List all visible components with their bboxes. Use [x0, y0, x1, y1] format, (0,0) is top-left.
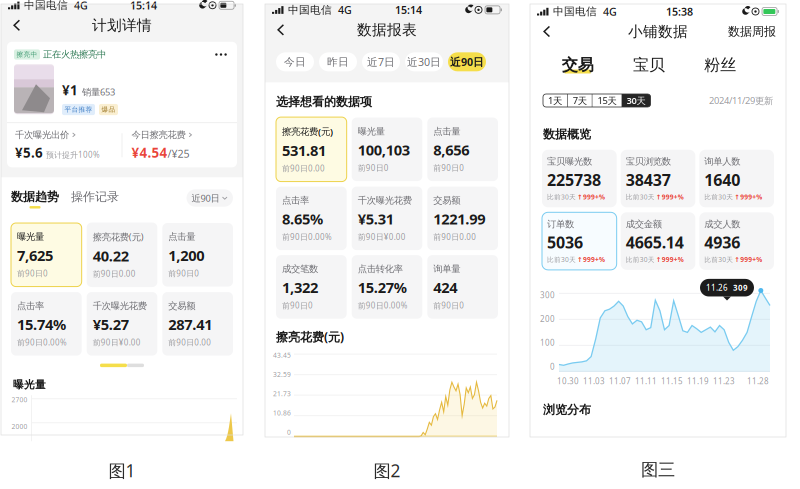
- staticText: 前90日0: [358, 162, 389, 173]
- button[interactable]: 今日: [276, 52, 314, 71]
- button[interactable]: 千次曝光花费: [87, 292, 157, 356]
- staticText: ¥5.31: [358, 209, 394, 228]
- button[interactable]: 粉丝: [685, 56, 756, 74]
- staticText: 7天: [573, 94, 587, 107]
- button[interactable]: 点击转化率: [352, 255, 422, 319]
- button[interactable]: Back: [6, 15, 28, 35]
- button[interactable]: 询单量: [427, 255, 498, 319]
- staticText: 中国电信: [550, 5, 597, 18]
- button[interactable]: 成交金额: [621, 212, 695, 270]
- button[interactable]: 30天: [622, 94, 651, 107]
- button[interactable]: 近30日: [405, 52, 443, 71]
- staticText: 爆品: [101, 105, 115, 114]
- staticText: 1天: [548, 94, 562, 107]
- button[interactable]: 宝贝曝光数: [542, 150, 617, 207]
- button[interactable]: 点击率: [11, 292, 82, 356]
- button[interactable]: 曝光量: [352, 118, 422, 181]
- staticText: 操作记录: [71, 189, 119, 204]
- button[interactable]: 订单数: [542, 212, 617, 270]
- staticText: 2700: [11, 395, 27, 404]
- staticText: 15天: [598, 94, 617, 107]
- staticText: ↑999+%: [734, 192, 762, 201]
- staticText: ¥1: [62, 81, 78, 99]
- button[interactable]: Back: [536, 21, 558, 41]
- staticText: 1221.99: [433, 209, 485, 228]
- staticText: 8.65%: [282, 209, 323, 228]
- staticText: 100: [540, 337, 555, 348]
- staticText: 成交人数: [704, 218, 740, 230]
- staticText: 32.59: [273, 370, 291, 379]
- button[interactable]: 询单人数: [699, 150, 774, 207]
- staticText: 交易额: [168, 300, 195, 311]
- staticText: 数据趋势: [11, 189, 59, 204]
- staticText: 点击量: [168, 231, 195, 242]
- button[interactable]: 交易额: [162, 292, 233, 356]
- button[interactable]: 宝贝: [613, 56, 685, 74]
- button[interactable]: 点击量: [162, 223, 233, 287]
- staticText: 11.26: [706, 282, 728, 293]
- button[interactable]: 宝贝浏览数: [621, 150, 695, 207]
- staticText: ↑999+%: [577, 255, 605, 264]
- staticText: 287.41: [168, 314, 212, 334]
- button[interactable]: 点击率: [276, 187, 347, 250]
- button[interactable]: 15天: [593, 94, 622, 107]
- staticText: 15:14: [130, 0, 157, 12]
- button[interactable]: 数据周报: [724, 20, 780, 43]
- staticText: 前90日0: [433, 300, 464, 311]
- button[interactable]: 近90日: [448, 52, 486, 71]
- staticText: 近90日: [450, 55, 484, 69]
- staticText: 正在火热擦亮中: [43, 49, 106, 60]
- button[interactable]: 昨日: [319, 52, 357, 71]
- staticText: 15:38: [666, 4, 693, 19]
- button[interactable]: 近90日: [186, 189, 233, 207]
- staticText: 点击转化率: [358, 263, 403, 275]
- button[interactable]: More options: [212, 49, 230, 59]
- button[interactable]: 7天: [568, 94, 592, 107]
- button[interactable]: 擦亮花费(元): [276, 117, 347, 182]
- staticText: 前90日¥0.00: [93, 337, 141, 348]
- staticText: 0: [287, 428, 291, 437]
- staticText: 浏览分布: [543, 402, 591, 417]
- staticText: 30天: [627, 94, 646, 107]
- staticText: 数据概览: [543, 127, 591, 142]
- staticText: 225738: [547, 169, 601, 190]
- staticText: 前90日0.00: [168, 337, 211, 348]
- button[interactable]: 成交人数: [699, 212, 774, 270]
- staticText: 前90日0: [282, 300, 313, 311]
- staticText: 数据周报: [728, 24, 776, 39]
- staticText: 比前30天: [547, 255, 576, 264]
- button[interactable]: 千次曝光花费: [352, 187, 422, 250]
- button[interactable]: 近7日: [362, 52, 400, 71]
- staticText: 成交笔数: [282, 263, 318, 275]
- staticText: 2000: [11, 422, 27, 431]
- staticText: 询单人数: [704, 156, 740, 167]
- staticText: 309: [733, 282, 748, 293]
- button[interactable]: 曝光量: [11, 223, 82, 287]
- staticText: 图三: [641, 459, 675, 480]
- button[interactable]: 交易: [542, 56, 613, 74]
- button[interactable]: 点击量: [427, 118, 498, 181]
- button[interactable]: 成交笔数: [276, 255, 347, 319]
- staticText: 5036: [547, 232, 583, 253]
- staticText: 询单量: [433, 263, 460, 275]
- staticText: 近7日: [367, 55, 395, 69]
- staticText: 数据报表: [357, 21, 417, 39]
- button[interactable]: 今日擦亮花费: [122, 123, 237, 167]
- staticText: 今日擦亮花费: [131, 129, 185, 141]
- staticText: 8,656: [433, 140, 469, 159]
- staticText: 4G: [68, 0, 88, 12]
- button[interactable]: 1天: [543, 94, 567, 107]
- button[interactable]: 擦亮花费(元): [87, 223, 157, 287]
- button[interactable]: 千次曝光出价: [7, 123, 121, 167]
- staticText: 图2: [373, 459, 400, 482]
- staticText: 销量653: [82, 86, 115, 98]
- staticText: 千次曝光花费: [358, 195, 412, 206]
- button[interactable]: 交易额: [427, 187, 498, 250]
- staticText: 点击率: [282, 195, 309, 206]
- staticText: 中国电信: [21, 0, 68, 12]
- button[interactable]: Back: [270, 20, 292, 40]
- staticText: 前90日0.00: [93, 268, 136, 279]
- staticText: 曝光量: [17, 231, 44, 242]
- staticText: 前90日0.00: [433, 231, 476, 242]
- staticText: 1,200: [168, 245, 204, 265]
